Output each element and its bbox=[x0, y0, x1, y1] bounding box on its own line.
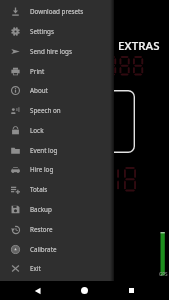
staticText: Calibrate bbox=[30, 245, 57, 254]
button[interactable]: Event log bbox=[0, 140, 114, 160]
button[interactable]: Send hire logs bbox=[0, 41, 114, 61]
staticText: Speech on bbox=[30, 106, 61, 115]
button[interactable]: Lock bbox=[0, 120, 114, 140]
button[interactable]: Calibrate bbox=[0, 239, 114, 259]
button[interactable]: About bbox=[0, 80, 114, 100]
button[interactable]: Restore bbox=[0, 219, 114, 239]
button[interactable]: Totals bbox=[0, 179, 114, 199]
staticText: Exit bbox=[30, 264, 41, 273]
button[interactable]: Print bbox=[0, 61, 114, 81]
staticText: Totals bbox=[30, 185, 48, 194]
button[interactable]: Home bbox=[75, 281, 94, 300]
button[interactable]: Exit bbox=[0, 258, 114, 278]
button[interactable]: Hire log bbox=[0, 159, 114, 179]
staticText: Download presets bbox=[30, 7, 84, 16]
staticText: Print bbox=[30, 67, 45, 76]
button[interactable]: Recents bbox=[122, 281, 141, 300]
staticText: Backup bbox=[30, 205, 52, 214]
staticText: Restore bbox=[30, 225, 53, 234]
staticText: Settings bbox=[30, 27, 54, 36]
staticText: About bbox=[30, 86, 48, 95]
staticText: GPS bbox=[159, 271, 168, 277]
staticText: EXTRAS bbox=[118, 38, 160, 54]
button[interactable]: Download presets bbox=[0, 1, 114, 21]
button[interactable]: Back bbox=[28, 281, 47, 300]
button[interactable]: Backup bbox=[0, 199, 114, 219]
staticText: Hire log bbox=[30, 165, 54, 174]
staticText: Send hire logs bbox=[30, 47, 72, 56]
button[interactable]: Speech on bbox=[0, 100, 114, 120]
staticText: Lock bbox=[30, 126, 44, 135]
button[interactable]: Settings bbox=[0, 21, 114, 41]
staticText: Event log bbox=[30, 146, 58, 155]
